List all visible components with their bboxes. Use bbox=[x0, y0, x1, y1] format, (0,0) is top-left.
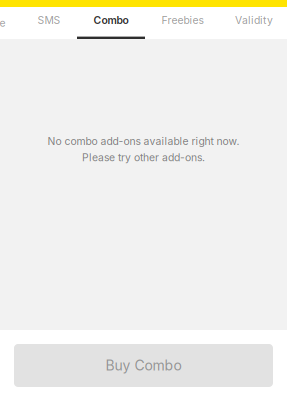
staticText: Please try other add-ons. bbox=[82, 151, 205, 164]
button[interactable]: Freebies bbox=[145, 7, 220, 39]
button[interactable]: Combo bbox=[77, 7, 145, 39]
staticText: SMS bbox=[37, 14, 60, 27]
button[interactable]: Validity bbox=[220, 7, 287, 39]
staticText: Voice bbox=[0, 17, 5, 29]
button[interactable]: Buy Combo bbox=[14, 344, 273, 387]
staticText: Buy Combo bbox=[105, 357, 181, 374]
staticText: Combo bbox=[93, 14, 128, 27]
staticText: Validity bbox=[235, 14, 273, 27]
staticText: Freebies bbox=[161, 14, 203, 27]
button[interactable]: Voice bbox=[0, 7, 21, 39]
staticText: No combo add-ons available right now. bbox=[47, 135, 239, 148]
button[interactable]: SMS bbox=[21, 7, 77, 39]
